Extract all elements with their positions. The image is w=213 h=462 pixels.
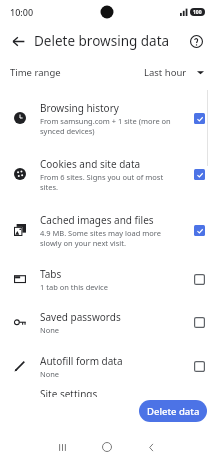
- button[interactable]: Home: [97, 437, 117, 457]
- staticText: 100: [193, 9, 202, 16]
- button[interactable]: Back: [7, 30, 29, 52]
- button[interactable]: Tabs: [0, 258, 213, 300]
- staticText: Site settings: [40, 387, 98, 397]
- button[interactable]: Autofill form data: [0, 344, 213, 388]
- staticText: Time range: [10, 66, 61, 79]
- button[interactable]: Time range: [0, 58, 213, 86]
- staticText: 4.9 MB. Some sites may load more slowly …: [40, 228, 161, 248]
- staticText: Last hour: [144, 66, 187, 79]
- staticText: 10:00: [10, 6, 34, 18]
- staticText: Autofill form data: [40, 354, 123, 368]
- button[interactable]: Delete data: [139, 400, 207, 422]
- button[interactable]: Browsing history: [0, 90, 213, 146]
- staticText: Tabs: [40, 267, 62, 281]
- button[interactable]: Saved passwords: [0, 300, 213, 344]
- staticText: Cached images and files: [40, 213, 154, 227]
- staticText: None: [40, 325, 60, 335]
- button[interactable]: Back: [141, 437, 161, 457]
- staticText: Delete data: [147, 405, 200, 418]
- staticText: Cookies and site data: [40, 157, 141, 171]
- staticText: 1 tab on this device: [40, 282, 108, 292]
- button[interactable]: Recents: [52, 437, 72, 457]
- button[interactable]: Cached images and files: [0, 202, 213, 258]
- staticText: Saved passwords: [40, 310, 121, 324]
- button[interactable]: Help: [185, 30, 207, 52]
- button[interactable]: Cookies and site data: [0, 146, 213, 202]
- staticText: Browsing history: [40, 101, 119, 115]
- staticText: Delete browsing data: [34, 32, 170, 50]
- staticText: From samsung.com + 1 site (more on synce…: [40, 116, 171, 136]
- staticText: From 6 sites. Signs you out of most site…: [40, 172, 164, 192]
- staticText: None: [40, 369, 60, 379]
